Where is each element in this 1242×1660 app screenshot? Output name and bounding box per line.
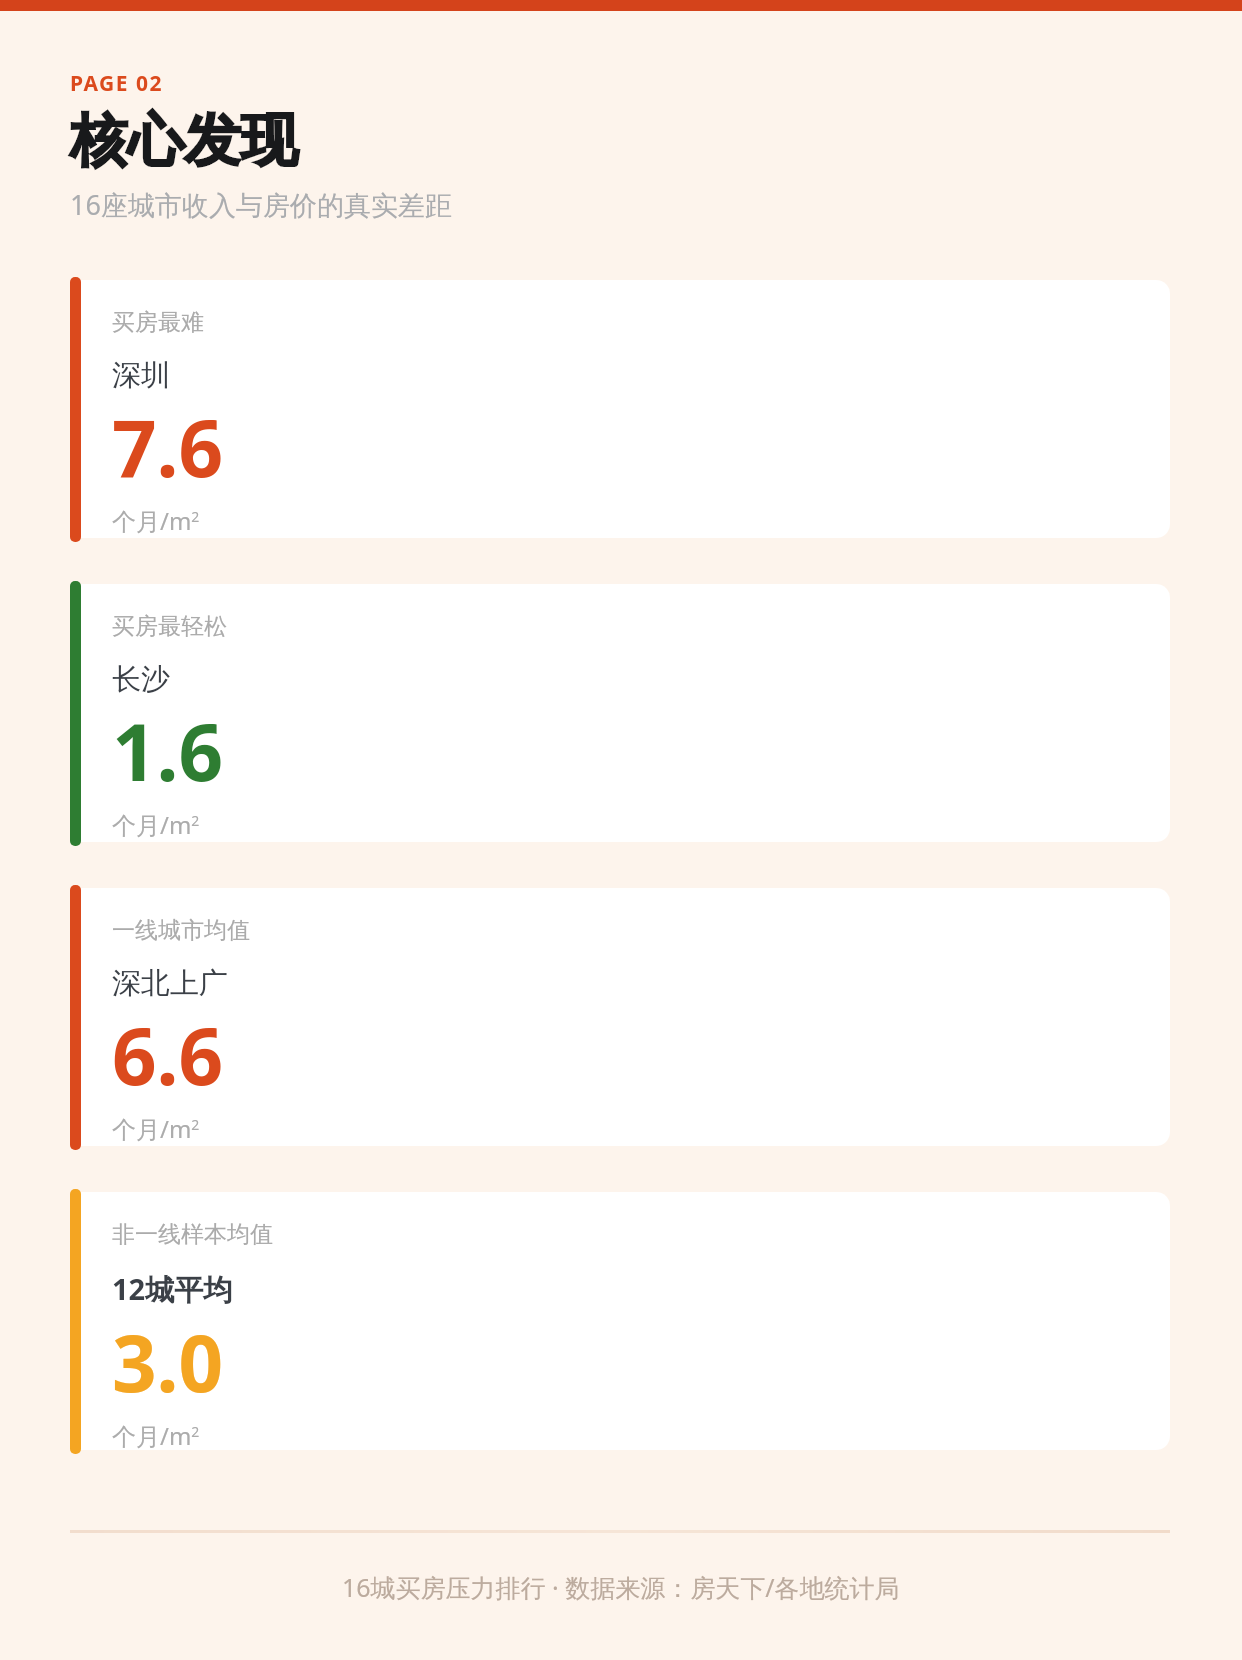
staticText: 3.0 [112, 1309, 224, 1415]
staticText: 非一线样本均值 [112, 1220, 273, 1249]
staticText: 16城买房压力排行 · 数据来源：房天下/各地统计局 [342, 1570, 900, 1604]
staticText: 12城平均 [112, 1269, 233, 1309]
staticText: 一线城市均值 [112, 916, 250, 945]
staticText: 个月/m2 [112, 808, 200, 841]
staticText: 1.6 [112, 698, 224, 804]
staticText: 个月/m2 [112, 1419, 200, 1450]
staticText: 6.6 [112, 1002, 224, 1108]
staticText: 核心发现 [70, 105, 298, 177]
button[interactable]: 非一线样本均值 [70, 1189, 1170, 1454]
button[interactable]: 买房最难 [70, 277, 1170, 542]
staticText: PAGE 02 [70, 69, 164, 98]
staticText: 16座城市收入与房价的真实差距 [70, 186, 452, 223]
staticText: 7.6 [112, 394, 224, 500]
staticText: 个月/m2 [112, 504, 200, 537]
staticText: 深圳 [112, 357, 170, 394]
staticText: 买房最难 [112, 308, 204, 337]
staticText: 长沙 [112, 661, 170, 698]
staticText: 深北上广 [112, 965, 228, 1002]
button[interactable]: 买房最轻松 [70, 581, 1170, 846]
staticText: 买房最轻松 [112, 612, 227, 641]
staticText: 个月/m2 [112, 1112, 200, 1145]
button[interactable]: 一线城市均值 [70, 885, 1170, 1150]
